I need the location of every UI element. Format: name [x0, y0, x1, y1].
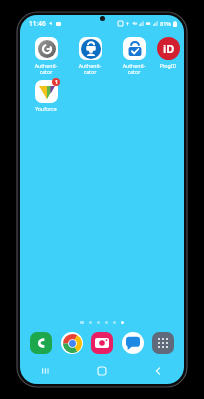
button[interactable]: Home: [90, 362, 114, 380]
button[interactable]: [121, 321, 124, 324]
staticText: PingID: [156, 62, 180, 69]
staticText: 11:46: [29, 19, 46, 28]
button[interactable]: [89, 321, 92, 324]
button[interactable]: [113, 321, 116, 324]
button[interactable]: Recents: [34, 362, 58, 380]
staticText: 81%: [160, 20, 171, 27]
button[interactable]: Authenti- cator: [24, 36, 68, 76]
button[interactable]: Apps: [150, 330, 176, 356]
staticText: Authenti- cator: [24, 62, 68, 75]
button[interactable]: Authenti- cator: [112, 36, 156, 76]
button[interactable]: Messages: [120, 330, 146, 356]
button[interactable]: Phone: [28, 330, 54, 356]
button[interactable]: iD: [156, 36, 180, 70]
button[interactable]: [80, 321, 84, 324]
button[interactable]: Back: [146, 362, 170, 380]
staticText: Authenti- cator: [68, 62, 112, 75]
staticText: Youforce: [24, 105, 68, 112]
button[interactable]: [97, 321, 100, 324]
button[interactable]: Camera: [89, 330, 115, 356]
staticText: iD: [163, 41, 175, 56]
button[interactable]: Chrome: [59, 330, 85, 356]
staticText: 1: [55, 79, 58, 86]
button[interactable]: [105, 321, 108, 324]
staticText: Authenti- cator: [112, 62, 156, 75]
button[interactable]: 1: [24, 79, 68, 113]
button[interactable]: Authenti- cator: [68, 36, 112, 76]
